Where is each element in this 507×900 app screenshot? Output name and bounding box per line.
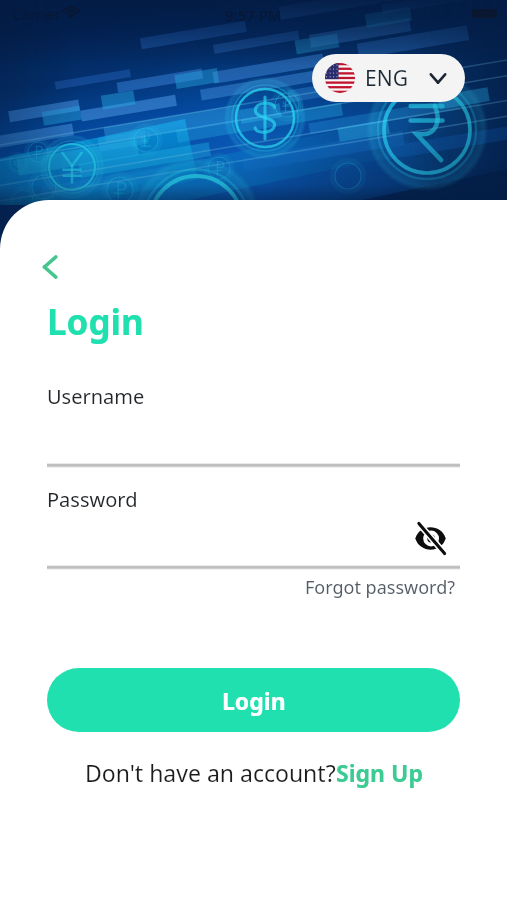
staticText: ENG: [365, 64, 408, 93]
button[interactable]: Forgot password?: [305, 575, 456, 600]
staticText: Sign Up: [336, 757, 423, 788]
button[interactable]: ENG: [312, 54, 465, 102]
staticText: Login: [222, 685, 286, 716]
staticText: 9:57 PM: [225, 5, 282, 25]
button[interactable]: Show password: [410, 518, 450, 558]
staticText: Don't have an account?: [85, 757, 336, 788]
staticText: Carrier: [12, 4, 61, 24]
staticText: Login: [47, 298, 144, 346]
staticText: Username: [47, 383, 145, 410]
button[interactable]: Back: [32, 249, 68, 285]
button[interactable]: Login: [47, 668, 460, 732]
button[interactable]: Sign Up: [336, 757, 423, 788]
staticText: Forgot password?: [305, 575, 456, 600]
staticText: Password: [47, 486, 138, 513]
